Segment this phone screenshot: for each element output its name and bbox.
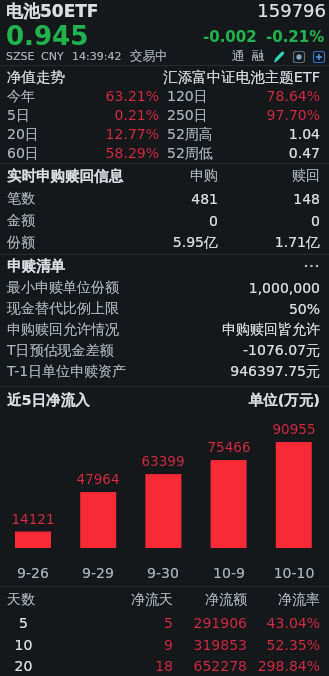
staticText: 申赎清单	[7, 257, 65, 275]
staticText: 319853	[173, 637, 247, 653]
staticText: 金额	[7, 212, 136, 230]
staticText: 9-30	[133, 565, 193, 581]
staticText: 现金替代比例上限	[7, 300, 119, 318]
staticText: 50%	[288, 301, 320, 317]
staticText: 天数	[7, 591, 47, 609]
staticText: 52周低	[167, 145, 213, 163]
staticText: -0.002	[203, 28, 257, 45]
staticText: 0.21%	[7, 107, 159, 123]
staticText: 250日	[167, 107, 208, 125]
staticText: 52周高	[167, 126, 213, 144]
staticText: 291906	[173, 615, 247, 631]
staticText: 0	[136, 213, 218, 229]
staticText: 481	[136, 191, 218, 207]
staticText: 0.47	[167, 145, 320, 161]
staticText: 笔数	[7, 190, 136, 208]
staticText: 10-10	[264, 565, 324, 581]
staticText: 5	[0, 615, 47, 631]
staticText: 18	[47, 658, 173, 674]
staticText: 43.04%	[247, 615, 320, 631]
staticText: 298.84%	[247, 658, 320, 674]
staticText: 90955	[264, 421, 324, 437]
staticText: 12.77%	[7, 126, 159, 142]
staticText: 0	[218, 213, 320, 229]
staticText: 0.945	[6, 21, 89, 51]
button[interactable]: More options	[300, 255, 322, 277]
staticText: 63.21%	[7, 88, 159, 104]
staticText: 份额	[7, 234, 136, 252]
staticText: 单位(万元)	[248, 391, 320, 409]
staticText: 47964	[68, 471, 128, 487]
button[interactable]: Chart	[292, 50, 305, 63]
staticText: 97.70%	[167, 107, 320, 123]
staticText: 14121	[3, 511, 63, 527]
staticText: 近5日净流入	[7, 391, 90, 409]
staticText: -1076.07元	[243, 342, 320, 360]
staticText: 通	[232, 48, 245, 64]
staticText: 融	[252, 48, 265, 64]
staticText: 9	[47, 637, 173, 653]
staticText: 14:39:42	[72, 50, 122, 63]
staticText: CNY	[41, 50, 64, 63]
staticText: 1.04	[167, 126, 320, 142]
staticText: 净流天	[47, 591, 173, 609]
staticText: 10	[0, 637, 47, 653]
staticText: 今年	[7, 88, 35, 106]
staticText: 赎回	[218, 167, 320, 185]
staticText: 5.95亿	[136, 234, 218, 252]
staticText: 10-9	[199, 565, 259, 581]
staticText: 75466	[199, 439, 259, 455]
staticText: 20日	[7, 126, 39, 144]
staticText: 120日	[167, 88, 208, 106]
staticText: 20	[0, 658, 47, 674]
staticText: 946397.75元	[230, 363, 320, 381]
staticText: 63399	[133, 453, 193, 469]
staticText: 实时申购赎回信息	[7, 167, 136, 185]
staticText: 159796	[0, 0, 326, 21]
staticText: 1,000,000	[248, 280, 320, 296]
staticText: 5日	[7, 107, 30, 125]
staticText: 60日	[7, 145, 39, 163]
staticText: 148	[218, 191, 320, 207]
button[interactable]: Add to watchlist	[312, 50, 325, 63]
staticText: 申购赎回允许情况	[7, 321, 119, 339]
staticText: 1.71亿	[218, 234, 320, 252]
staticText: 申购赎回皆允许	[222, 321, 320, 339]
staticText: SZSE	[6, 50, 35, 63]
staticText: 交易中	[130, 48, 168, 64]
staticText: T-1日单位申赎资产	[7, 363, 127, 381]
staticText: 最小申赎单位份额	[7, 279, 119, 297]
staticText: 652278	[173, 658, 247, 674]
staticText: T日预估现金差额	[7, 342, 114, 360]
staticText: 9-26	[3, 565, 63, 581]
staticText: 58.29%	[7, 145, 159, 161]
button[interactable]: Edit	[272, 50, 285, 63]
staticText: 申购	[136, 167, 218, 185]
staticText: 52.35%	[247, 637, 320, 653]
staticText: 汇添富中证电池主题ETF	[163, 68, 320, 86]
staticText: 净值走势	[7, 68, 65, 86]
staticText: 电池50ETF	[6, 1, 99, 22]
staticText: 净流额	[173, 591, 247, 609]
staticText: -0.21%	[266, 28, 325, 45]
staticText: 78.64%	[167, 88, 320, 104]
staticText: 5	[47, 615, 173, 631]
staticText: 净流率	[247, 591, 320, 609]
staticText: 9-29	[68, 565, 128, 581]
